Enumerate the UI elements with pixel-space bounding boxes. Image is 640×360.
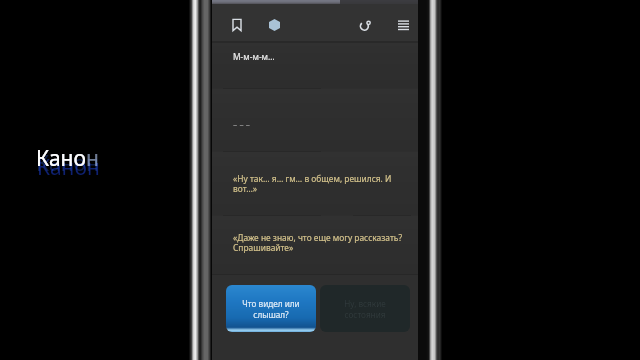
staticText: Канон: [37, 153, 100, 182]
button[interactable]: Bookmarks: [224, 12, 250, 38]
staticText: Ну, всякие состояния: [325, 298, 405, 320]
staticText: Кано: [36, 144, 86, 173]
button[interactable]: Restart: [352, 12, 378, 38]
button[interactable]: «Ну так… я… гм… в общем, решился. И вот……: [212, 172, 418, 212]
staticText: – – –: [233, 119, 250, 130]
staticText: Что видел или слышал?: [231, 298, 311, 320]
button[interactable]: М-м-м-м…: [212, 50, 418, 86]
staticText: «Ну так… я… гм… в общем, решился. И вот……: [233, 173, 413, 194]
button[interactable]: – – –: [212, 118, 418, 148]
staticText: М-м-м-м…: [233, 51, 275, 62]
staticText: «Даже не знаю, что еще могу рассказать? …: [233, 232, 413, 253]
staticText: Канон: [36, 144, 99, 173]
button[interactable]: Что видел или слышал?: [226, 285, 316, 332]
button[interactable]: Menu: [390, 12, 416, 38]
button[interactable]: «Даже не знаю, что еще могу рассказать? …: [212, 231, 418, 271]
button[interactable]: Inventory: [261, 12, 287, 38]
staticText: Канон: [36, 149, 99, 178]
